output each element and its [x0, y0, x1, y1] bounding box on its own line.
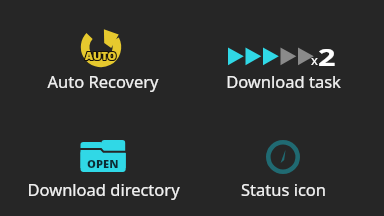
staticText: AUTO [86, 49, 118, 64]
staticText: AUTO [85, 48, 117, 63]
staticText: x [311, 51, 318, 69]
staticText: 2 [318, 40, 336, 73]
staticText: Download task [226, 70, 341, 92]
staticText: Download directory [27, 178, 180, 200]
staticText: AUTO [85, 49, 117, 64]
button[interactable]: OPEN [0, 108, 192, 216]
button[interactable]: AUTO [0, 0, 192, 108]
button[interactable]: x [192, 0, 384, 108]
staticText: AUTO [84, 47, 116, 62]
staticText: OPEN [87, 157, 119, 171]
staticText: Status icon [241, 178, 326, 200]
staticText: AUTO [84, 48, 116, 63]
staticText: Auto Recovery [47, 70, 159, 92]
staticText: AUTO [86, 47, 118, 62]
button[interactable]: Status icon [192, 108, 384, 216]
staticText: AUTO [85, 47, 117, 62]
staticText: AUTO [86, 48, 118, 63]
staticText: AUTO [84, 49, 116, 64]
